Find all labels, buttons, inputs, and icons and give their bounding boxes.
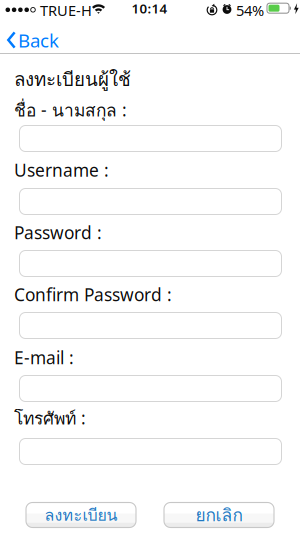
button[interactable]: E-mail — [19, 375, 281, 401]
button[interactable]: Password — [19, 250, 281, 276]
staticText: Confirm Password : — [14, 283, 172, 306]
staticText: E-mail : — [14, 346, 74, 369]
staticText: 10:14 — [131, 0, 167, 17]
staticText: 54% — [236, 0, 264, 20]
staticText: ลงทะเบียน — [44, 503, 117, 527]
button[interactable]: Username — [19, 188, 281, 214]
staticText: Back — [18, 28, 59, 53]
staticText: Password : — [14, 221, 102, 244]
button[interactable]: Name - Surname — [19, 125, 281, 151]
staticText: ลงทะเบียนผู้ใช้ — [14, 65, 131, 94]
staticText: ยกเลิก — [195, 502, 242, 528]
staticText: TRUE-H — [40, 0, 92, 20]
staticText: โทรศัพท์ : — [14, 405, 86, 432]
button[interactable]: ลงทะเบียน — [26, 502, 136, 527]
button[interactable]: ยกเลิก — [164, 502, 274, 527]
button[interactable]: Back — [0, 24, 70, 54]
staticText: Username : — [14, 158, 109, 181]
staticText: ชื่อ - นามสกุล : — [14, 97, 127, 124]
button[interactable]: Confirm Password — [19, 312, 281, 338]
button[interactable]: Phone — [19, 438, 281, 464]
